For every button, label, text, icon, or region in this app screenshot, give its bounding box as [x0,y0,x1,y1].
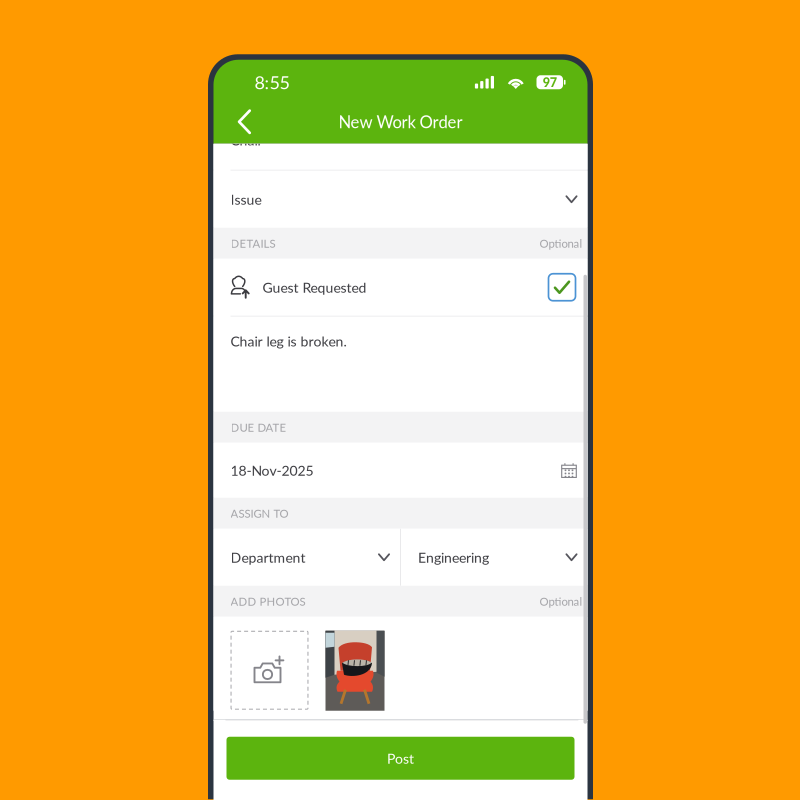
button[interactable]: Back [222,100,266,144]
button[interactable]: Guest Requested [213,259,587,316]
button[interactable]: Add photo [230,631,308,710]
staticText: Optional [539,236,582,250]
staticText: ADD PHOTOS [230,594,305,608]
staticText: ASSIGN TO [230,506,288,520]
button[interactable]: 18-Nov-2025 [213,443,587,498]
staticText: 8:55 [254,71,289,93]
staticText: DUE DATE [230,420,286,434]
button[interactable]: Issue [213,171,587,228]
button[interactable]: Engineering [401,529,587,586]
staticText: 18-Nov-2025 [230,462,313,479]
staticText: Issue [230,191,261,208]
staticText: Guest Requested [262,279,366,296]
staticText: DETAILS [230,236,275,250]
staticText: 97 [543,75,557,90]
staticText: Post [387,750,414,767]
staticText: Department [230,549,305,566]
staticText: Optional [539,594,582,608]
staticText: Engineering [418,549,489,566]
staticText: New Work Order [338,112,462,132]
button[interactable]: Post [226,737,574,780]
staticText: Chair leg is broken. [230,333,346,350]
staticText: Chair [230,132,262,149]
button[interactable]: Department [213,529,400,586]
